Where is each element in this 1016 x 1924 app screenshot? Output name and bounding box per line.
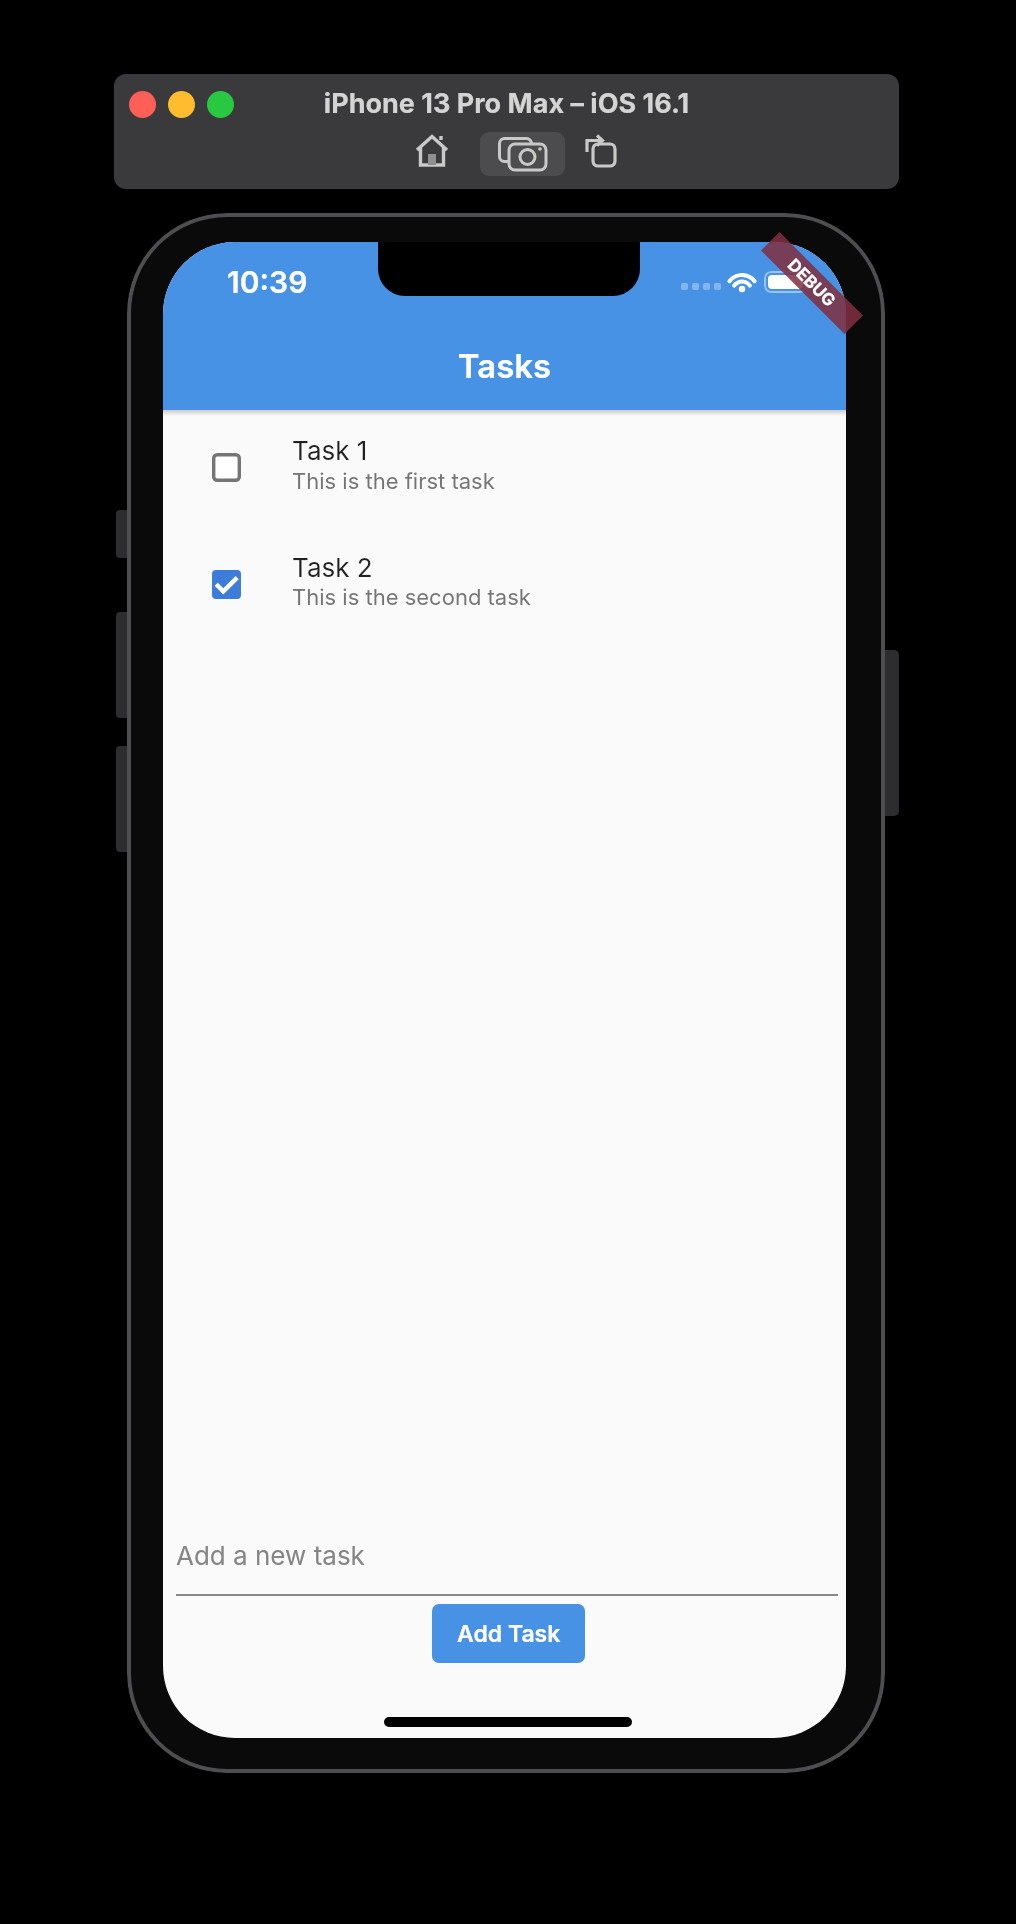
staticText: 10:39 (227, 264, 308, 300)
staticText: This is the first task (292, 468, 495, 495)
staticText: Add Task (457, 1620, 561, 1648)
button[interactable] (415, 134, 451, 170)
button[interactable] (207, 91, 234, 118)
button[interactable] (480, 132, 565, 176)
staticText: Tasks (163, 346, 846, 386)
staticText: iPhone 13 Pro Max – iOS 16.1 (114, 87, 899, 120)
staticText: DEBUG (783, 255, 840, 312)
staticText: Task 2 (292, 552, 373, 583)
button[interactable] (163, 540, 846, 658)
staticText: Add a new task (176, 1540, 365, 1571)
button[interactable] (163, 422, 846, 540)
button[interactable] (168, 91, 195, 118)
button[interactable] (583, 134, 619, 170)
staticText: Task 1 (292, 435, 368, 466)
staticText: This is the second task (292, 584, 531, 611)
button[interactable]: Add Task (432, 1604, 585, 1663)
button[interactable] (129, 91, 156, 118)
